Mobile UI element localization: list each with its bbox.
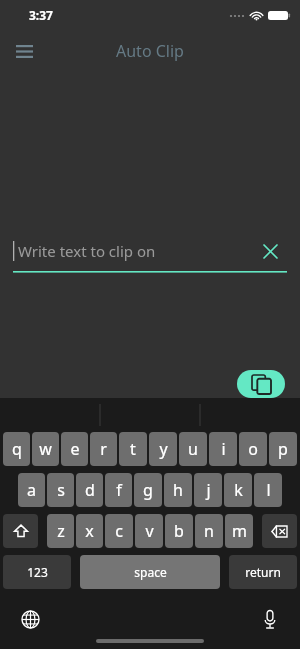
button[interactable]: Shift	[3, 514, 38, 548]
staticText: l	[266, 479, 271, 501]
button[interactable]: return	[229, 555, 297, 589]
staticText: f	[116, 479, 122, 501]
staticText: a	[27, 479, 36, 501]
button[interactable]: 123	[3, 555, 71, 589]
staticText: o	[248, 438, 258, 460]
button[interactable]: o	[239, 432, 267, 466]
button[interactable]: w	[32, 432, 59, 466]
staticText: m	[232, 520, 247, 542]
button[interactable]: Clear text	[257, 238, 283, 264]
staticText: z	[57, 520, 65, 542]
staticText: x	[85, 520, 94, 542]
staticText: Write text to clip on	[18, 241, 156, 261]
button[interactable]: j	[194, 473, 222, 507]
button[interactable]: l	[254, 473, 282, 507]
button[interactable]: Backspace	[262, 514, 297, 548]
button[interactable]: Write text to clip on	[13, 232, 287, 273]
button[interactable]: i	[209, 432, 237, 466]
staticText: y	[159, 438, 168, 460]
button[interactable]: p	[269, 432, 297, 466]
button[interactable]: e	[61, 432, 88, 466]
staticText: w	[39, 438, 52, 460]
staticText: q	[12, 438, 22, 460]
button[interactable]: f	[105, 473, 132, 507]
staticText: 3:37	[29, 7, 53, 23]
button[interactable]: space	[80, 555, 220, 589]
button[interactable]: Menu	[8, 35, 40, 67]
button[interactable]: h	[164, 473, 192, 507]
staticText: j	[206, 479, 211, 501]
staticText: s	[57, 479, 65, 501]
staticText: return	[245, 564, 281, 580]
button[interactable]: b	[165, 514, 193, 548]
button[interactable]: r	[90, 432, 117, 466]
button[interactable]: c	[105, 514, 133, 548]
button[interactable]: n	[195, 514, 223, 548]
button[interactable]: Voice input	[255, 604, 285, 634]
button[interactable]: k	[224, 473, 252, 507]
button[interactable]: y	[149, 432, 177, 466]
button[interactable]: Change keyboard language	[15, 604, 45, 634]
button[interactable]: g	[134, 473, 162, 507]
staticText: b	[174, 520, 184, 542]
staticText: c	[115, 520, 123, 542]
staticText: space	[134, 564, 167, 580]
button[interactable]: v	[135, 514, 163, 548]
staticText: g	[143, 479, 153, 501]
button[interactable]: t	[119, 432, 147, 466]
button[interactable]: a	[18, 473, 45, 507]
staticText: t	[130, 438, 136, 460]
button[interactable]: q	[3, 432, 30, 466]
button[interactable]: u	[179, 432, 207, 466]
staticText: i	[221, 438, 226, 460]
button[interactable]: Copy to clipboard	[237, 370, 285, 398]
staticText: p	[278, 438, 288, 460]
button[interactable]: m	[225, 514, 253, 548]
button[interactable]: x	[76, 514, 103, 548]
staticText: Auto Clip	[116, 40, 184, 62]
staticText: e	[70, 438, 80, 460]
button[interactable]: z	[47, 514, 74, 548]
staticText: k	[234, 479, 243, 501]
button[interactable]: d	[76, 473, 103, 507]
button[interactable]: s	[47, 473, 74, 507]
staticText: 123	[27, 564, 48, 580]
staticText: v	[145, 520, 154, 542]
staticText: d	[85, 479, 95, 501]
staticText: n	[204, 520, 214, 542]
staticText: r	[100, 438, 107, 460]
staticText: u	[188, 438, 198, 460]
staticText: h	[173, 479, 183, 501]
